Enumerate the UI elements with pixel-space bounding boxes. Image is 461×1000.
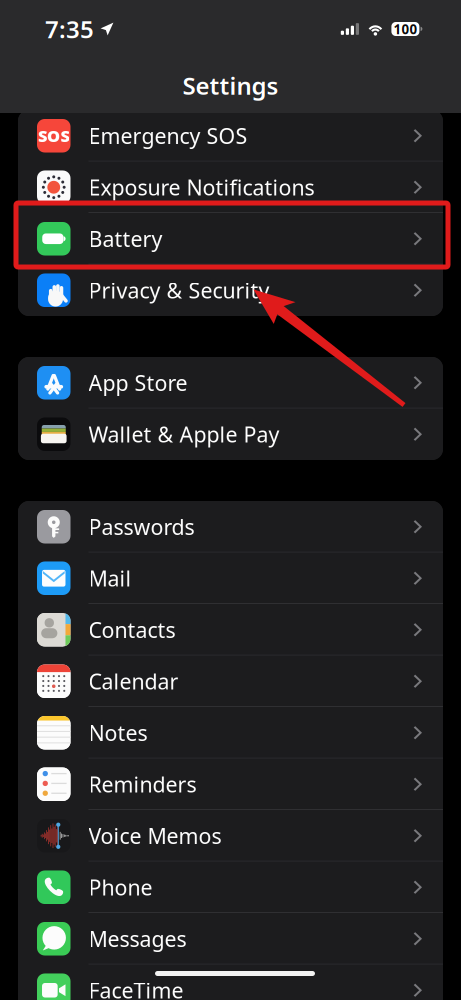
button[interactable]: Voice Memos <box>18 810 443 861</box>
staticText: Wallet & Apple Pay <box>88 420 279 448</box>
button[interactable]: FaceTime <box>18 964 443 1000</box>
staticText: Mail <box>88 564 131 592</box>
button[interactable]: Phone <box>18 861 443 913</box>
button[interactable]: Contacts <box>18 604 443 655</box>
staticText: App Store <box>88 369 187 397</box>
staticText: Notes <box>88 719 147 747</box>
staticText: Contacts <box>88 616 175 644</box>
staticText: 7:35 <box>45 13 94 45</box>
staticText: Privacy & Security <box>88 276 269 304</box>
staticText: FaceTime <box>88 976 183 1000</box>
button[interactable]: Passwords <box>18 501 443 552</box>
button[interactable]: SOS <box>18 110 443 161</box>
staticText: Settings <box>182 70 278 101</box>
staticText: SOS <box>40 126 68 145</box>
button[interactable]: Wallet & Apple Pay <box>18 408 443 460</box>
staticText: Passwords <box>88 513 194 541</box>
button[interactable]: App Store <box>18 357 443 408</box>
staticText: Calendar <box>88 667 178 695</box>
button[interactable]: Reminders <box>18 758 443 810</box>
button[interactable]: Battery <box>18 213 443 264</box>
button[interactable]: Calendar <box>18 655 443 707</box>
staticText: Phone <box>88 873 152 901</box>
button[interactable]: Messages <box>18 913 443 964</box>
button[interactable]: Exposure Notifications <box>18 161 443 213</box>
button[interactable]: Notes <box>18 707 443 758</box>
button[interactable]: Privacy & Security <box>18 264 443 316</box>
staticText: Reminders <box>88 770 196 798</box>
staticText: 100 <box>393 20 417 38</box>
staticText: Battery <box>88 225 162 253</box>
staticText: Voice Memos <box>88 822 221 850</box>
staticText: Emergency SOS <box>88 122 247 150</box>
staticText: Messages <box>88 925 186 953</box>
staticText: Exposure Notifications <box>88 173 314 201</box>
button[interactable]: Mail <box>18 552 443 604</box>
